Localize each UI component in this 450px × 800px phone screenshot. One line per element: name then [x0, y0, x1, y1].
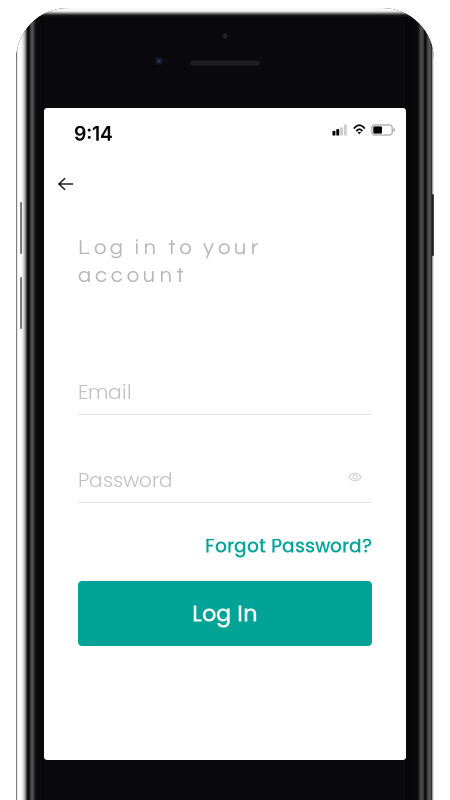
staticText: y: [203, 236, 214, 259]
staticText: g: [110, 236, 123, 259]
button[interactable]: Log In: [78, 581, 372, 646]
staticText: n: [143, 236, 156, 259]
staticText: o: [94, 236, 106, 259]
staticText: Forgot Password?: [205, 533, 372, 559]
staticText: o: [218, 236, 230, 259]
staticText: c: [111, 264, 123, 287]
button[interactable]: Back: [46, 167, 86, 201]
button[interactable]: Forgot Password?: [78, 535, 372, 557]
staticText: L: [78, 236, 90, 259]
staticText: a: [78, 264, 91, 287]
staticText: i: [135, 236, 140, 259]
staticText: r: [251, 236, 259, 259]
staticText: u: [234, 236, 247, 259]
staticText: Log In: [192, 598, 258, 629]
staticText: Email: [78, 378, 132, 406]
button[interactable]: Show password: [338, 464, 372, 490]
staticText: o: [179, 236, 191, 259]
staticText: t: [176, 264, 183, 287]
staticText: t: [168, 236, 175, 259]
staticText: c: [95, 264, 107, 287]
staticText: u: [143, 264, 156, 287]
staticText: n: [159, 264, 172, 287]
staticText: 9:14: [74, 122, 113, 145]
staticText: Password: [78, 466, 173, 494]
staticText: o: [127, 264, 139, 287]
